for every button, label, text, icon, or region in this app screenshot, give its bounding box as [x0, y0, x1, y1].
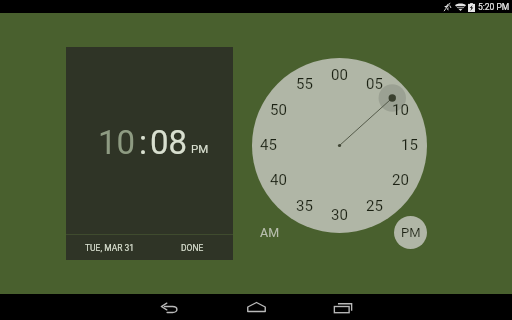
button[interactable]: PM — [394, 216, 427, 249]
button[interactable]: 10 — [98, 123, 136, 162]
button[interactable]: PM — [191, 142, 209, 155]
staticText: AM — [260, 225, 280, 240]
button[interactable]: 30 — [326, 206, 352, 224]
staticText: 15 — [401, 136, 418, 154]
staticText: 25 — [366, 197, 383, 215]
staticText: : — [139, 123, 147, 162]
button[interactable]: 08 — [150, 123, 188, 162]
button[interactable]: TUE, MAR 31 — [77, 237, 143, 259]
button[interactable]: Minute picker dial — [252, 58, 427, 233]
button[interactable]: 35 — [291, 197, 317, 215]
button[interactable]: 45 — [255, 136, 281, 154]
button[interactable]: 05 — [361, 75, 387, 93]
button[interactable]: 55 — [291, 75, 317, 93]
staticText: 30 — [331, 206, 348, 224]
button[interactable]: 00 — [326, 66, 352, 84]
button[interactable]: 50 — [265, 101, 291, 119]
button[interactable]: 25 — [361, 197, 387, 215]
button[interactable]: Home — [233, 294, 280, 320]
staticText: 5:20 PM — [478, 2, 510, 12]
staticText: 10 — [392, 101, 409, 119]
staticText: DONE — [181, 243, 204, 253]
staticText: PM — [191, 142, 209, 155]
staticText: 20 — [392, 171, 409, 189]
staticText: 00 — [331, 66, 348, 84]
staticText: 55 — [296, 75, 313, 93]
staticText: PM — [401, 225, 421, 240]
staticText: 08 — [150, 123, 188, 162]
button[interactable]: 10 — [387, 101, 413, 119]
staticText: 35 — [296, 197, 313, 215]
staticText: 50 — [270, 101, 287, 119]
staticText: 05 — [366, 75, 383, 93]
button[interactable]: 15 — [396, 136, 422, 154]
button[interactable]: 40 — [265, 171, 291, 189]
staticText: 10 — [98, 123, 136, 162]
staticText: 40 — [270, 171, 287, 189]
button[interactable]: Recent apps — [319, 295, 366, 320]
button[interactable]: DONE — [173, 237, 212, 259]
button[interactable]: AM — [252, 219, 288, 245]
button[interactable]: Back — [146, 294, 193, 320]
staticText: TUE, MAR 31 — [85, 243, 135, 253]
button[interactable]: 20 — [387, 171, 413, 189]
staticText: 45 — [260, 136, 277, 154]
